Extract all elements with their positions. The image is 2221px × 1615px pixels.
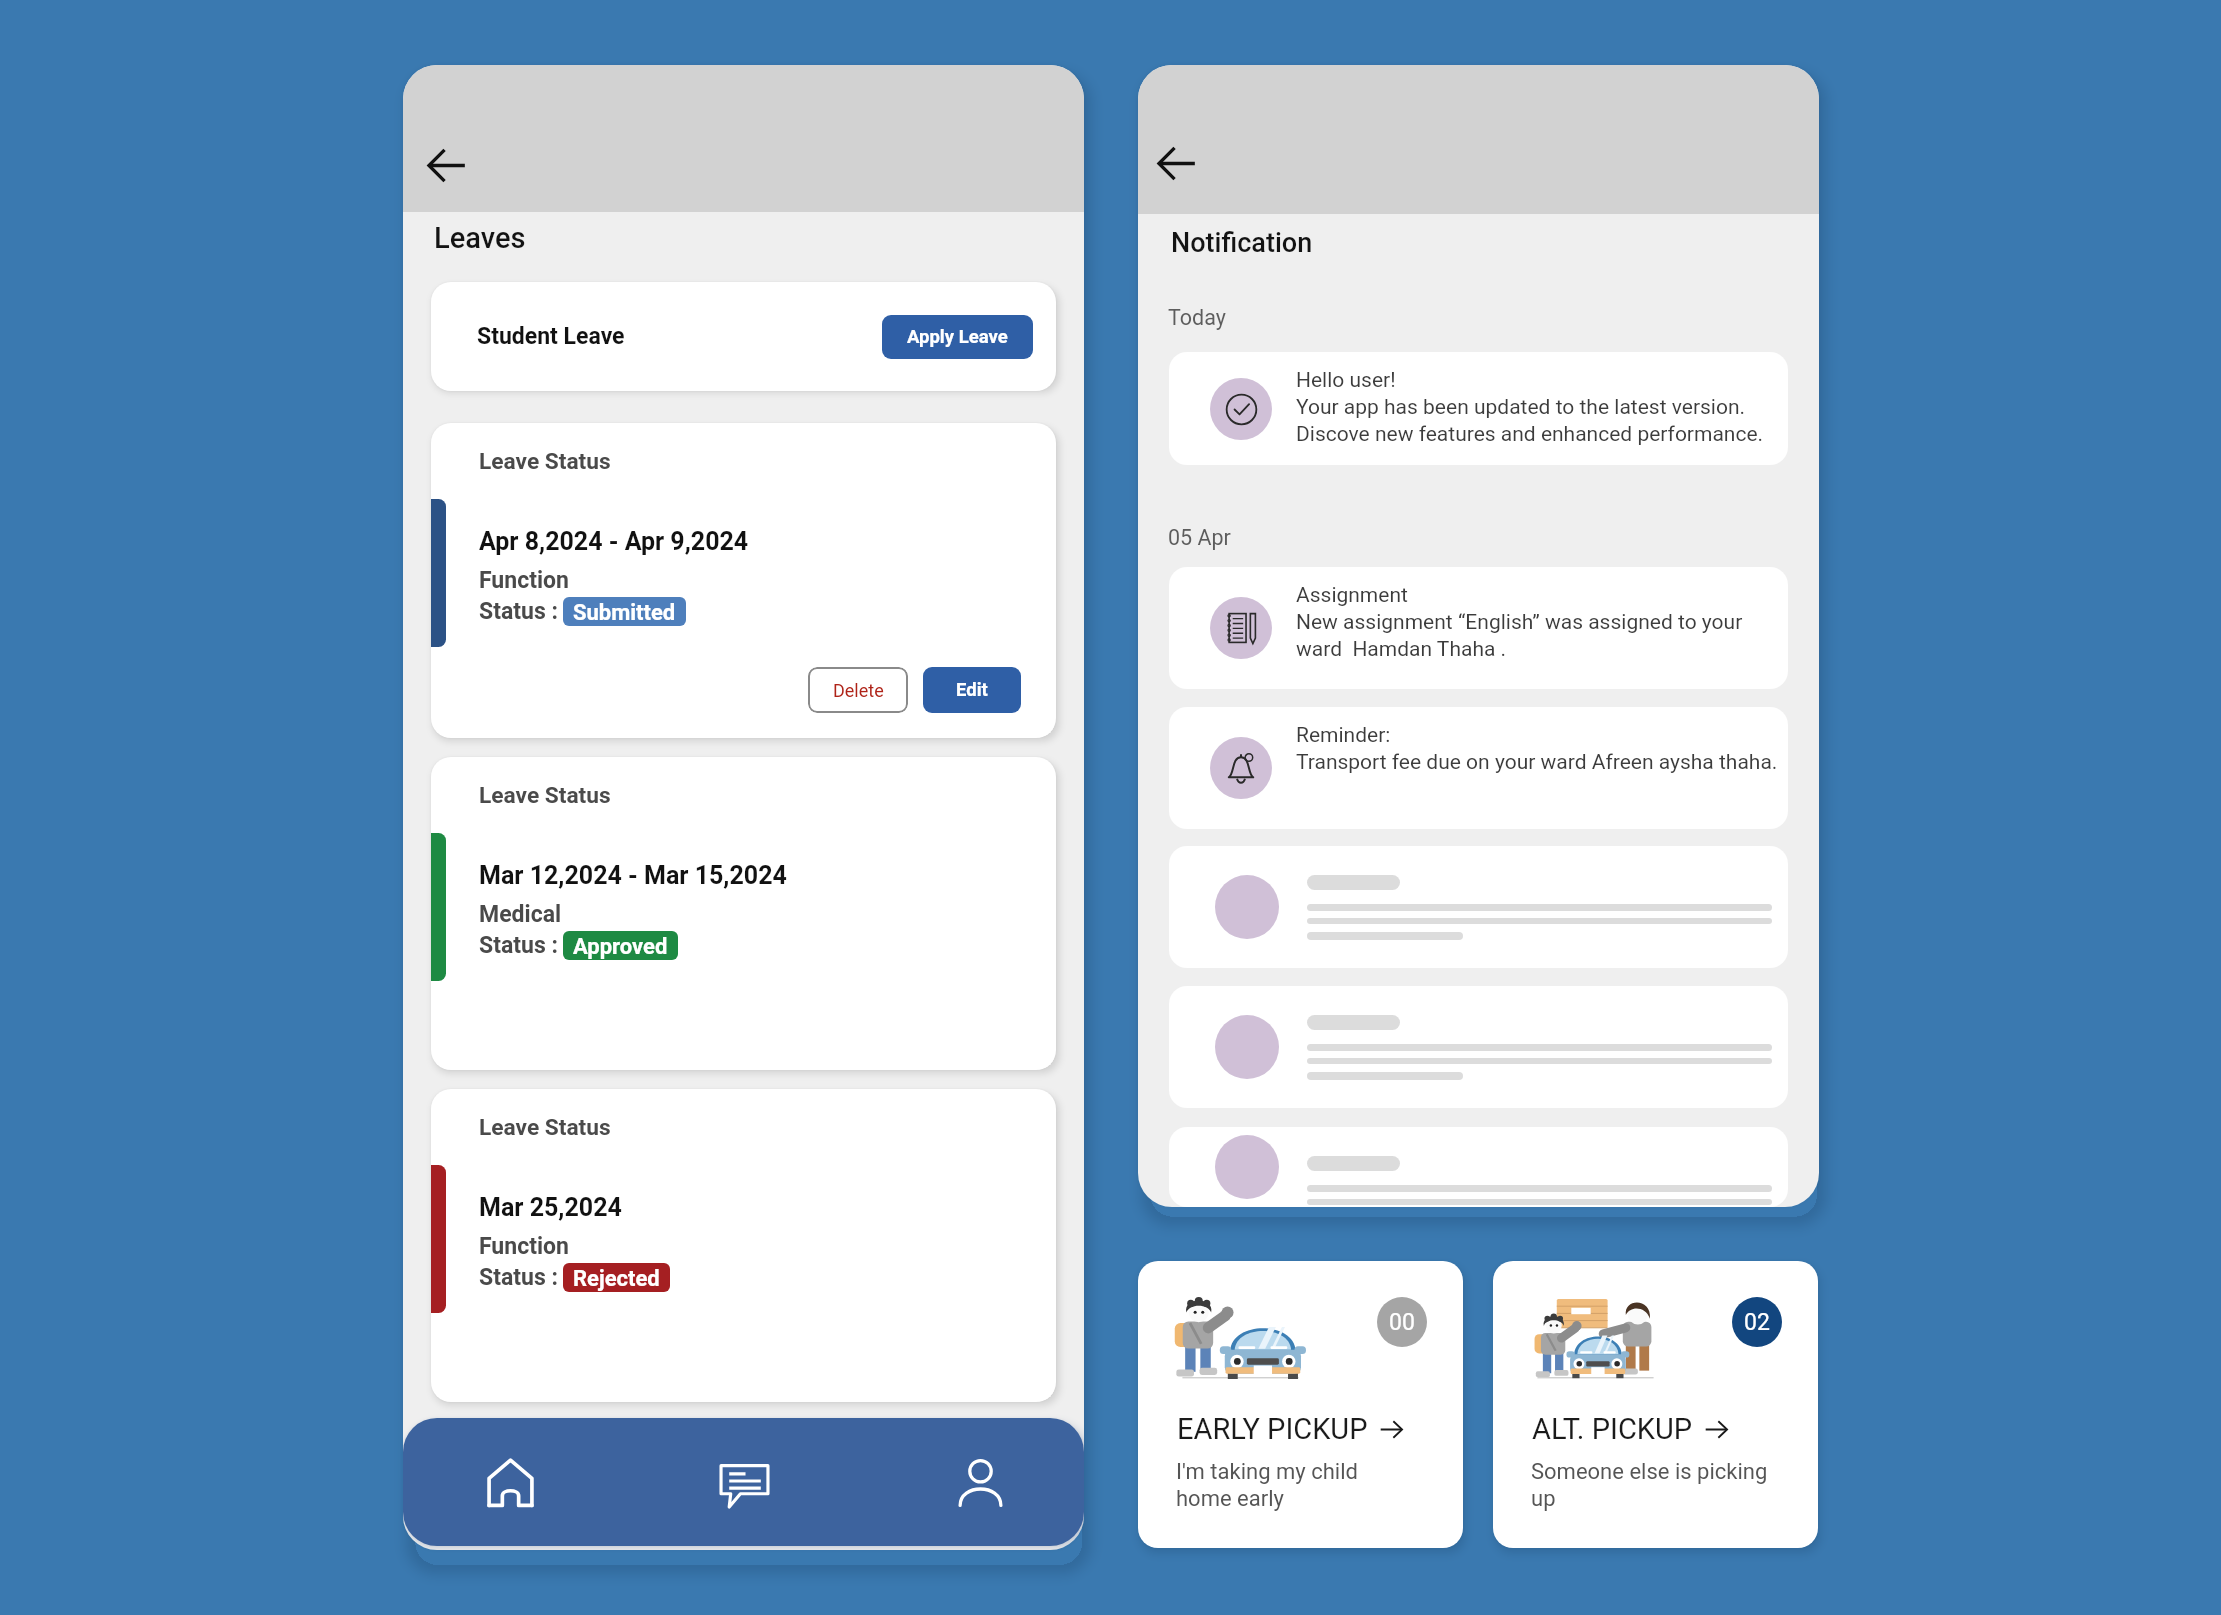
staticText: Mar 25,2024 — [479, 1193, 622, 1222]
button[interactable]: Edit — [923, 667, 1021, 713]
button[interactable] — [1169, 846, 1788, 968]
button[interactable]: Leave Status — [431, 423, 1056, 738]
staticText: Hello user! — [1296, 366, 1396, 393]
staticText: Apply Leave — [907, 326, 1008, 348]
button[interactable]: Profile — [925, 1418, 1035, 1546]
staticText: Submitted — [573, 599, 676, 625]
staticText: Delete — [833, 680, 884, 701]
staticText: Status : — [479, 932, 558, 959]
staticText: EARLY PICKUP — [1177, 1412, 1368, 1446]
staticText: 02 — [1744, 1309, 1770, 1336]
staticText: Apr 8,2024 - Apr 9,2024 — [479, 527, 749, 556]
staticText: Student Leave — [477, 323, 625, 350]
staticText: Leaves — [434, 221, 526, 255]
staticText: 05 Apr — [1168, 525, 1231, 550]
staticText: Leave Status — [479, 1114, 611, 1141]
staticText: Approved — [573, 933, 668, 959]
staticText: ALT. PICKUP — [1532, 1412, 1693, 1446]
button[interactable]: Student Leave — [431, 282, 1056, 391]
button[interactable]: Apply Leave — [882, 315, 1033, 359]
button[interactable]: Delete — [808, 667, 908, 713]
staticText: Assignment — [1296, 581, 1408, 608]
staticText: Status : — [479, 1264, 558, 1291]
staticText: Status : — [479, 598, 558, 625]
staticText: Edit — [956, 679, 988, 701]
staticText: Medical — [479, 901, 562, 928]
button[interactable]: 00 — [1138, 1261, 1463, 1548]
staticText: Rejected — [573, 1265, 660, 1291]
staticText: Leave Status — [479, 448, 611, 475]
staticText: New assignment “English” was assigned to… — [1296, 608, 1743, 662]
button[interactable]: Assignment — [1169, 567, 1788, 689]
staticText: 00 — [1389, 1309, 1415, 1336]
staticText: Reminder: — [1296, 721, 1391, 748]
staticText: Mar 12,2024 - Mar 15,2024 — [479, 861, 787, 890]
staticText: Notification — [1171, 227, 1313, 259]
button[interactable] — [1169, 986, 1788, 1108]
staticText: Someone else is picking up — [1531, 1458, 1768, 1512]
staticText: Your app has been updated to the latest … — [1296, 393, 1764, 447]
button[interactable]: Leave Status — [431, 757, 1056, 1070]
button[interactable]: Leave Status — [431, 1089, 1056, 1402]
button[interactable] — [1169, 1127, 1788, 1207]
button[interactable]: Messages — [689, 1418, 799, 1546]
staticText: Leave Status — [479, 782, 611, 809]
button[interactable]: 02 — [1493, 1261, 1818, 1548]
staticText: Function — [479, 567, 569, 594]
button[interactable]: Home — [455, 1418, 565, 1546]
button[interactable]: Hello user! — [1169, 352, 1788, 465]
staticText: I'm taking my child home early — [1176, 1458, 1358, 1512]
staticText: Today — [1168, 305, 1226, 330]
button[interactable]: Back — [1157, 144, 1196, 183]
staticText: Transport fee due on your ward Afreen ay… — [1296, 748, 1778, 775]
button[interactable]: Back — [427, 146, 466, 185]
button[interactable]: Reminder: — [1169, 707, 1788, 829]
staticText: Function — [479, 1233, 569, 1260]
